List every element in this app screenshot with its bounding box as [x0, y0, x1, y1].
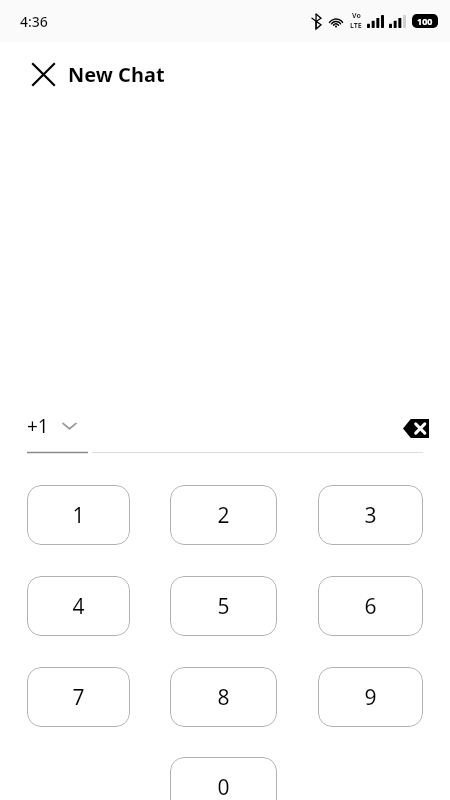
staticText: LTE	[350, 21, 362, 31]
staticText: New Chat	[68, 61, 165, 88]
button[interactable]: 4	[27, 576, 130, 636]
button[interactable]: 9	[318, 667, 423, 727]
button[interactable]: Close	[23, 54, 63, 94]
button[interactable]: Backspace	[394, 406, 438, 450]
staticText: 5	[217, 592, 230, 621]
staticText: 9	[364, 683, 377, 712]
button[interactable]: 1	[27, 485, 130, 545]
staticText: 4:36	[20, 12, 48, 31]
staticText: 6	[364, 592, 377, 621]
staticText: +1	[27, 413, 49, 439]
staticText: 0	[217, 773, 230, 800]
staticText: 3	[364, 501, 377, 530]
button[interactable]: 8	[170, 667, 277, 727]
button[interactable]: 2	[170, 485, 277, 545]
button[interactable]: 5	[170, 576, 277, 636]
button[interactable]: 0	[170, 757, 277, 800]
staticText: 8	[217, 683, 230, 712]
staticText: 7	[72, 683, 85, 712]
staticText: 4	[72, 592, 85, 621]
button[interactable]: 6	[318, 576, 423, 636]
button[interactable]: 7	[27, 667, 130, 727]
button[interactable]: +1	[24, 406, 90, 446]
button[interactable]: 3	[318, 485, 423, 545]
staticText: Vo	[352, 11, 361, 21]
staticText: 2	[217, 501, 230, 530]
staticText: 1	[72, 501, 85, 530]
staticText: 100	[417, 15, 433, 27]
